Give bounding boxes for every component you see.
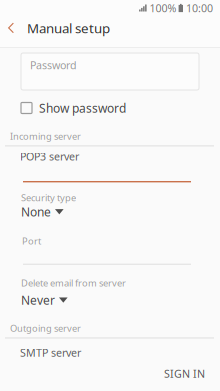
staticText: Security type <box>21 191 76 204</box>
button[interactable]: Security type <box>0 191 220 220</box>
staticText: 10:00 <box>186 1 213 15</box>
staticText: None <box>21 204 51 220</box>
staticText: Delete email from server <box>21 277 126 289</box>
button[interactable]: Show password <box>0 98 220 118</box>
staticText: Password <box>30 58 77 72</box>
staticText: Incoming server <box>10 130 81 142</box>
button[interactable]: Back <box>0 17 22 39</box>
button[interactable]: SIGN IN <box>154 360 215 388</box>
button[interactable]: Port <box>0 229 220 265</box>
button[interactable]: Delete email from server <box>0 277 220 308</box>
staticText: Manual setup <box>27 19 110 37</box>
staticText: SIGN IN <box>164 367 205 381</box>
button[interactable]: Password <box>0 48 220 90</box>
button[interactable]: POP3 server <box>0 146 220 182</box>
staticText: Port <box>22 235 41 247</box>
staticText: SMTP server <box>20 345 81 360</box>
staticText: POP3 server <box>20 149 79 164</box>
staticText: Never <box>21 292 55 308</box>
staticText: Outgoing server <box>10 322 81 334</box>
staticText: 100% <box>150 1 177 15</box>
staticText: Show password <box>39 100 126 116</box>
button[interactable]: SMTP server <box>0 338 220 360</box>
